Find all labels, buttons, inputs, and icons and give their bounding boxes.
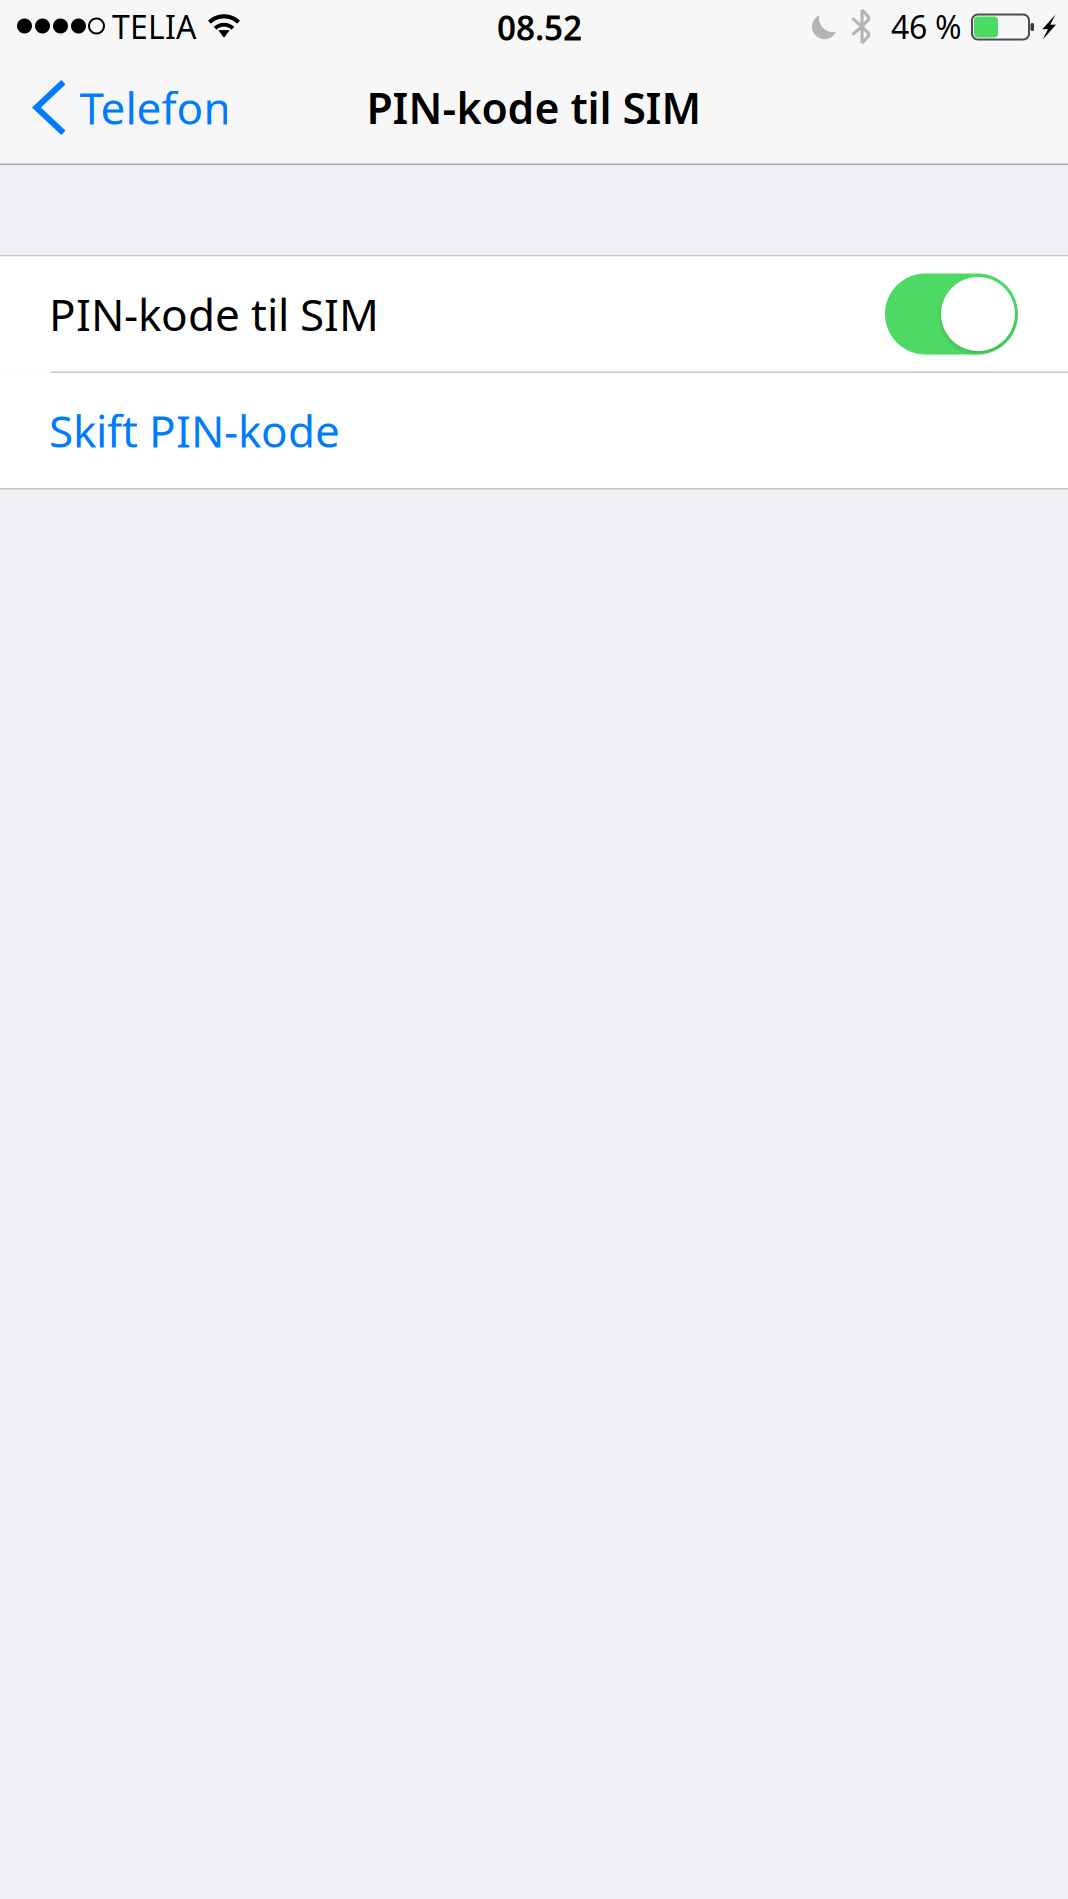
staticText: PIN-kode til SIM [49, 285, 379, 343]
button[interactable]: Skift PIN-kode [0, 373, 1068, 488]
staticText: Skift PIN-kode [49, 401, 340, 460]
staticText: 08.52 [497, 5, 582, 50]
button[interactable]: Telefon [0, 55, 246, 165]
staticText: PIN-kode til SIM [366, 79, 701, 136]
staticText: Telefon [79, 78, 230, 137]
staticText: TELIA [112, 5, 196, 48]
staticText: 46 % [891, 5, 962, 48]
button[interactable]: PIN-kode til SIM [0, 256, 1068, 371]
